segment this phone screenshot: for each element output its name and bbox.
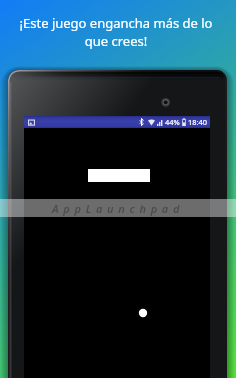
staticText: 44% (165, 117, 180, 127)
button[interactable]: Vista previa del juego (8, 70, 227, 378)
staticText: ¡Este juego engancha más de lo que crees… (10, 14, 222, 50)
staticText: AppLaunchpad (52, 201, 185, 216)
staticText: 18:40 (188, 117, 207, 127)
